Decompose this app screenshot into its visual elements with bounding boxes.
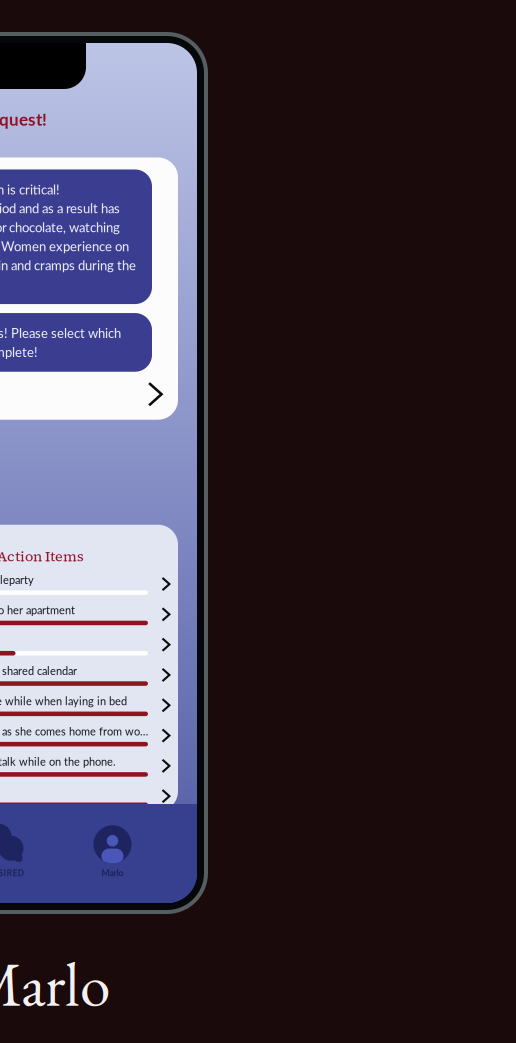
button[interactable]: Take her a hot water bottle while when l… <box>0 690 178 720</box>
button[interactable]: Send a box of chocolates to her apartmen… <box>0 599 178 629</box>
staticText: Marlo <box>101 868 123 878</box>
staticText: Give her a quick call for a talk while o… <box>0 755 116 768</box>
staticText: Retaining information is critical! She i… <box>0 181 136 292</box>
button[interactable]: DESIRED <box>0 823 59 879</box>
button[interactable]: Give her a quick call for a talk while o… <box>0 751 178 781</box>
staticText: Block out rest time on the shared calend… <box>0 664 77 677</box>
staticText: Host a movie night on a Teleparty <box>0 573 34 586</box>
button[interactable]: Continue <box>141 381 168 408</box>
staticText: DESIRED <box>0 868 24 878</box>
button[interactable]: Marlo <box>59 823 166 879</box>
button[interactable]: Run a warm bath ready for as she comes h… <box>0 720 178 751</box>
staticText: Marlo's Suggested Action Items <box>0 547 84 566</box>
button[interactable]: Refill her prescription <box>0 781 178 811</box>
staticText: Marlo <box>0 944 110 1024</box>
staticText: Send a box of chocolates to her apartmen… <box>0 603 75 617</box>
staticText: I created action items! Please select wh… <box>0 325 121 360</box>
button[interactable]: Host a movie night on a Teleparty <box>0 569 178 599</box>
button[interactable]: Block out rest time on the shared calend… <box>0 660 178 690</box>
button[interactable]: Order comfort food in <box>0 629 178 660</box>
staticText: Take her a hot water bottle while when l… <box>0 694 127 708</box>
staticText: Approve Your Request! <box>0 109 47 129</box>
staticText: Run a warm bath ready for as she comes h… <box>0 725 148 738</box>
